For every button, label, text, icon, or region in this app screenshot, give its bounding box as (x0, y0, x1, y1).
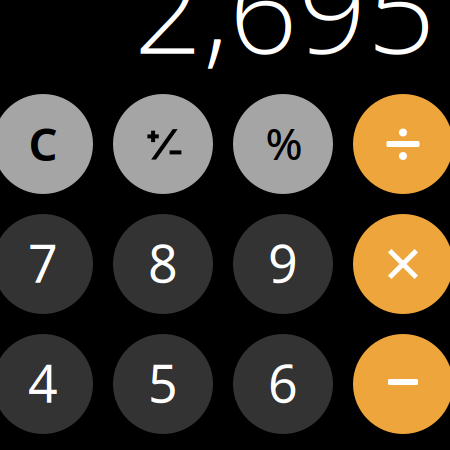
button[interactable]: Plus Minus (113, 94, 213, 194)
button[interactable]: 6 (233, 334, 333, 434)
button[interactable]: Percent (233, 94, 333, 194)
button[interactable]: Clear (0, 94, 93, 194)
staticText: 7 (28, 227, 58, 298)
button[interactable]: Subtract (353, 334, 450, 434)
button[interactable]: 7 (0, 214, 93, 314)
staticText: 9 (268, 227, 298, 298)
staticText: 2,695 (134, 0, 436, 89)
staticText: 6 (268, 347, 298, 418)
staticText: 8 (148, 227, 178, 298)
button[interactable]: Divide (353, 94, 450, 194)
button[interactable]: 4 (0, 334, 93, 434)
button[interactable]: 5 (113, 334, 213, 434)
staticText: C (28, 113, 57, 174)
button[interactable]: Multiply (353, 214, 450, 314)
staticText: 4 (28, 347, 58, 418)
button[interactable]: 9 (233, 214, 333, 314)
button[interactable]: 8 (113, 214, 213, 314)
staticText: 5 (148, 347, 178, 418)
staticText: % (265, 113, 302, 173)
